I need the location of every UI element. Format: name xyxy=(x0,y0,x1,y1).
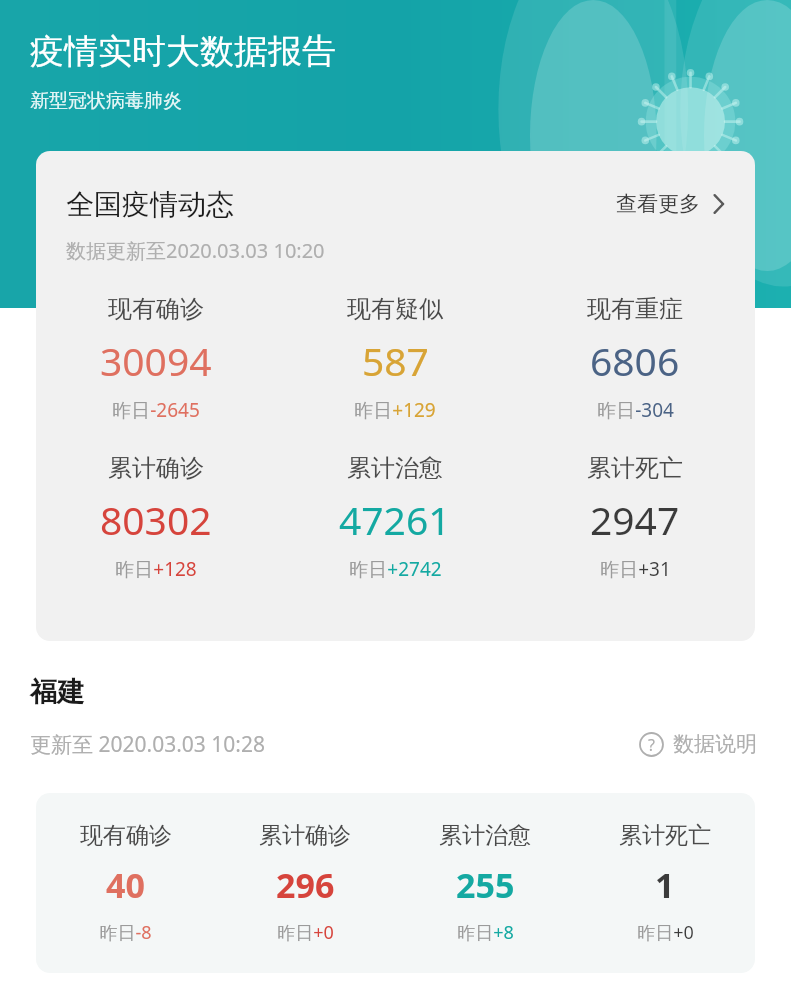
staticText: 昨日-304 xyxy=(597,397,674,423)
staticText: 累计治愈 xyxy=(439,821,531,850)
staticText: 查看更多 xyxy=(616,191,700,217)
staticText: 80302 xyxy=(100,493,212,546)
staticText: 更新至 2020.03.03 10:28 xyxy=(30,730,265,759)
staticText: 福建 xyxy=(30,675,84,709)
staticText: 6806 xyxy=(590,334,680,387)
staticText: 全国疫情动态 xyxy=(66,187,234,222)
button[interactable]: 现有重症 xyxy=(515,294,755,423)
staticText: 昨日+31 xyxy=(600,556,671,582)
staticText: 现有疑似 xyxy=(347,294,443,324)
staticText: 现有确诊 xyxy=(108,294,204,324)
staticText: 587 xyxy=(362,334,429,387)
staticText: 累计死亡 xyxy=(619,821,711,850)
button[interactable]: 累计确诊 xyxy=(36,453,275,582)
staticText: 40 xyxy=(106,862,145,908)
other: Data explanation xyxy=(639,732,664,757)
staticText: 昨日-2645 xyxy=(112,397,200,423)
button[interactable]: 累计治愈 xyxy=(275,453,515,582)
staticText: ? xyxy=(648,734,655,756)
staticText: 昨日+129 xyxy=(354,397,436,423)
staticText: 数据更新至2020.03.03 10:20 xyxy=(66,237,325,264)
staticText: 1 xyxy=(655,862,675,908)
staticText: 累计治愈 xyxy=(347,453,443,483)
staticText: 昨日+128 xyxy=(115,556,197,582)
button[interactable]: 累计治愈 xyxy=(395,821,575,945)
staticText: 累计确诊 xyxy=(108,453,204,483)
staticText: 昨日+0 xyxy=(277,920,334,945)
staticText: 现有确诊 xyxy=(80,821,172,850)
button[interactable]: Data explanation xyxy=(635,727,761,761)
staticText: 昨日-8 xyxy=(99,920,152,945)
button[interactable]: 现有确诊 xyxy=(36,821,215,945)
button[interactable]: 现有确诊 xyxy=(36,294,275,423)
staticText: 昨日+0 xyxy=(637,920,694,945)
button[interactable]: 现有疑似 xyxy=(275,294,515,423)
button[interactable]: 查看更多 xyxy=(610,185,731,223)
button[interactable]: 累计死亡 xyxy=(515,453,755,582)
staticText: 数据说明 xyxy=(673,731,757,757)
staticText: 47261 xyxy=(339,493,451,546)
staticText: 新型冠状病毒肺炎 xyxy=(30,89,182,113)
staticText: 累计死亡 xyxy=(587,453,683,483)
staticText: 现有重症 xyxy=(587,294,683,324)
staticText: 2947 xyxy=(590,493,680,546)
staticText: 昨日+8 xyxy=(457,920,514,945)
staticText: 296 xyxy=(276,862,335,908)
staticText: 疫情实时大数据报告 xyxy=(30,30,336,73)
button[interactable]: 累计死亡 xyxy=(575,821,755,945)
button[interactable]: 累计确诊 xyxy=(215,821,395,945)
staticText: 昨日+2742 xyxy=(349,556,442,582)
staticText: 累计确诊 xyxy=(259,821,351,850)
staticText: 30094 xyxy=(100,334,212,387)
staticText: 255 xyxy=(456,862,515,908)
